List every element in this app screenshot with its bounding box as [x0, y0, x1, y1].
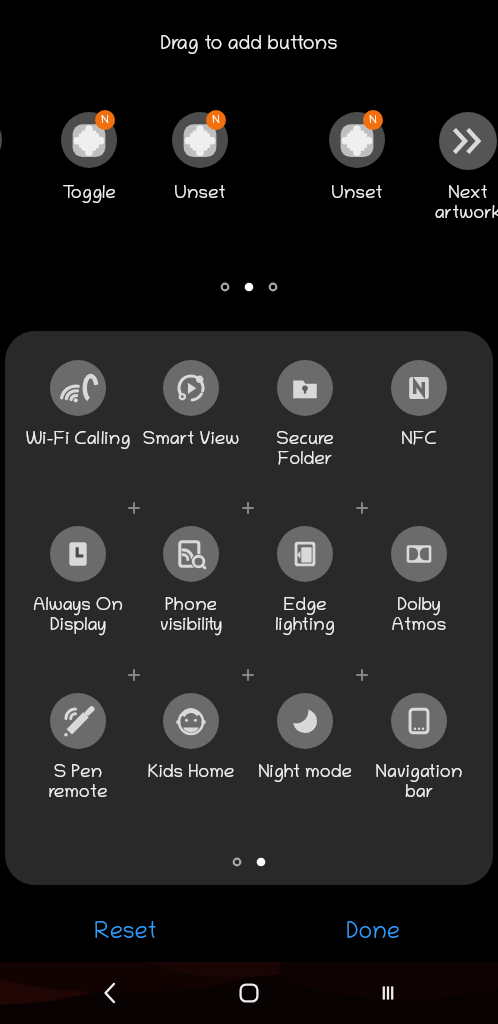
staticText: Kids Home [135, 763, 247, 783]
button[interactable]: N [148, 112, 252, 224]
button[interactable]: Phone visibility [135, 526, 247, 636]
staticText: Phone visibility [135, 596, 247, 636]
staticText: NFC [363, 430, 475, 450]
button[interactable]: Kids Home [135, 693, 247, 803]
button[interactable]: Edge lighting [249, 526, 361, 636]
button[interactable]: Always On Display [22, 526, 134, 636]
staticText: N [212, 114, 220, 127]
staticText: Edge lighting [249, 596, 361, 636]
staticText: Wi-Fi Calling [22, 430, 134, 450]
staticText: Drag to add buttons [160, 34, 338, 56]
button[interactable]: Next artwork [416, 112, 498, 224]
button[interactable]: Navigate [358, 962, 418, 1024]
staticText: Smart View [135, 430, 247, 450]
staticText: Dolby Atmos [363, 596, 475, 636]
button[interactable]: Wi-Fi Calling [22, 360, 134, 470]
staticText: Reset [94, 921, 157, 946]
staticText: Next artwork [416, 184, 498, 224]
staticText: N [101, 114, 109, 127]
staticText: Unset [305, 184, 409, 204]
staticText: Done [346, 921, 400, 946]
staticText: N [369, 114, 377, 127]
staticText: Toggle [37, 184, 141, 204]
button[interactable]: Navigate [80, 962, 140, 1024]
button[interactable]: Secure Folder [249, 360, 361, 470]
button[interactable]: N [305, 112, 409, 224]
staticText: Unset [148, 184, 252, 204]
button[interactable]: NFC [363, 360, 475, 470]
button[interactable]: N [0, 112, 26, 224]
button[interactable]: Dolby Atmos [363, 526, 475, 636]
staticText: Navigation bar [363, 763, 475, 803]
button[interactable]: Smart View [135, 360, 247, 470]
button[interactable]: N [37, 112, 141, 224]
button[interactable]: Navigation bar [363, 693, 475, 803]
button[interactable]: Done [273, 906, 473, 960]
staticText: S Pen remote [22, 763, 134, 803]
button[interactable]: S Pen remote [22, 693, 134, 803]
button[interactable]: Night mode [249, 693, 361, 803]
staticText: Night mode [249, 763, 361, 783]
staticText: Always On Display [22, 596, 134, 636]
button[interactable]: Reset [25, 906, 225, 960]
button[interactable]: Navigate [219, 962, 279, 1024]
staticText: Secure Folder [249, 430, 361, 470]
